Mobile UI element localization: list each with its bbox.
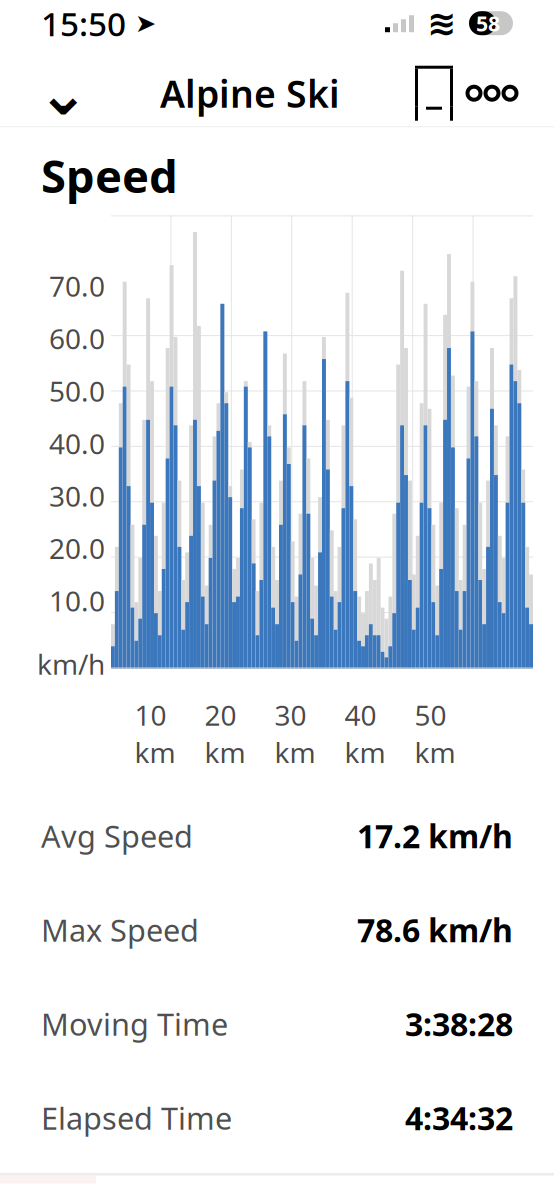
staticText: Alpine Ski — [160, 68, 340, 118]
button[interactable]: Elapsed Time — [0, 1071, 554, 1165]
staticText: 78.6 km/h — [357, 908, 513, 951]
staticText: Speed — [41, 145, 178, 205]
staticText: 50.0 — [49, 372, 105, 409]
staticText: Moving Time — [41, 1003, 228, 1044]
staticText: km/h — [37, 645, 105, 682]
staticText: 10.0 — [49, 582, 105, 619]
staticText: 20.0 — [49, 530, 105, 567]
staticText: ≋ — [427, 3, 456, 43]
button[interactable]: Max Speed — [0, 883, 554, 977]
button[interactable]: More options — [462, 64, 522, 122]
staticText: 20 km — [204, 696, 245, 771]
staticText: 17.2 km/h — [357, 814, 513, 857]
staticText: Elapsed Time — [41, 1097, 232, 1138]
staticText: 15:50 — [41, 1, 126, 45]
staticText: Max Speed — [41, 909, 199, 950]
button[interactable]: Moving Time — [0, 977, 554, 1071]
staticText: Avg Speed — [41, 815, 193, 856]
staticText: 50 km — [414, 696, 455, 771]
staticText: 30 km — [274, 696, 315, 771]
staticText: 58 — [476, 9, 500, 37]
staticText: ⌄ — [37, 58, 88, 128]
button[interactable]: Avg Speed — [0, 789, 554, 883]
staticText: 70.0 — [49, 267, 105, 305]
staticText: 4:34:32 — [405, 1096, 513, 1139]
staticText: ➤ — [126, 9, 156, 38]
button[interactable]: Close — [32, 64, 94, 122]
staticText: 3:38:28 — [405, 1002, 513, 1045]
staticText: 60.0 — [49, 320, 105, 357]
button[interactable]: Bookmark — [406, 64, 462, 122]
staticText: 30.0 — [49, 477, 105, 514]
staticText: 40.0 — [49, 425, 105, 462]
staticText: 10 km — [134, 696, 175, 771]
staticText: 40 km — [344, 696, 385, 771]
